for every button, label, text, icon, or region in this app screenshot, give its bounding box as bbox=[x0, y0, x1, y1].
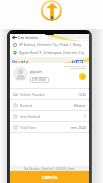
staticText: e bbox=[26, 59, 29, 64]
button[interactable]: Vehicle Number bbox=[10, 89, 89, 99]
staticText: min 2024 bbox=[71, 125, 86, 130]
staticText: WAITING FOR YOU YOUR DRIVER bbox=[64, 64, 86, 70]
staticText: g bbox=[21, 59, 24, 64]
staticText: o bbox=[18, 59, 21, 64]
button[interactable]: Back bbox=[10, 34, 48, 41]
staticText: Seat Booked bbox=[20, 114, 40, 119]
button[interactable]: Call driver bbox=[79, 73, 86, 80]
button[interactable]: Total Time bbox=[10, 122, 89, 132]
staticText: 1234 bbox=[78, 92, 86, 97]
staticText: l bbox=[24, 59, 26, 64]
staticText: GTF-3506 bbox=[32, 78, 47, 82]
staticText: o bbox=[15, 59, 18, 64]
button[interactable]: CANCEL bbox=[10, 171, 89, 183]
staticText: Bypass Road 'X', Srinarayana, Electronic… bbox=[19, 51, 89, 55]
staticText: piyush bbox=[30, 69, 42, 74]
staticText: Vehicle Number bbox=[20, 92, 46, 97]
button[interactable]: piyush bbox=[10, 66, 89, 81]
staticText: HP Avenue, Electronic City, Phase 1, Ban… bbox=[19, 43, 81, 47]
button[interactable]: Booked bbox=[10, 100, 89, 110]
staticText: Tax Selection | Fare Incl | ₹250.00 | Se… bbox=[24, 167, 75, 171]
button[interactable]: Bypass Road 'X', Srinarayana, Electronic… bbox=[10, 49, 89, 57]
button[interactable]: HP Avenue, Electronic City, Phase 1, Ban… bbox=[10, 41, 89, 49]
staticText: 15 min bbox=[73, 60, 82, 64]
staticText: Car Service Temple bbox=[18, 35, 48, 40]
staticText: Total Time bbox=[20, 125, 37, 130]
staticText: CANCEL bbox=[42, 175, 58, 180]
staticText: 1 bbox=[84, 114, 86, 119]
staticText: Electric bbox=[74, 103, 86, 108]
button[interactable]: Seat Booked bbox=[10, 111, 89, 121]
staticText: Booked bbox=[20, 103, 33, 108]
other: Back bbox=[12, 35, 17, 40]
staticText: G bbox=[12, 59, 15, 64]
